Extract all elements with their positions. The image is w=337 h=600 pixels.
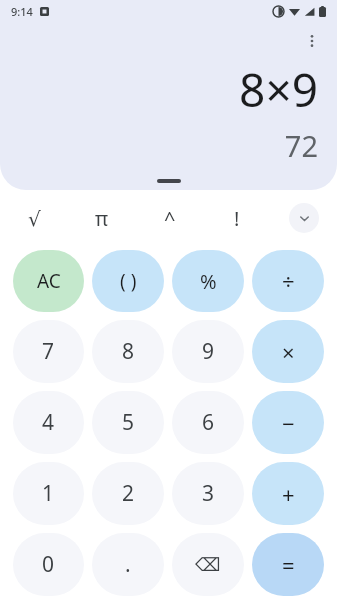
- button[interactable]: 7: [13, 320, 84, 383]
- staticText: 2: [122, 479, 135, 508]
- button[interactable]: AC: [13, 250, 84, 312]
- staticText: 8×9: [0, 58, 318, 121]
- staticText: !: [234, 205, 240, 232]
- button[interactable]: 2: [92, 462, 164, 525]
- staticText: 9: [202, 337, 215, 366]
- button[interactable]: 8: [92, 320, 164, 383]
- staticText: −: [282, 408, 295, 438]
- button[interactable]: 4: [13, 391, 84, 454]
- staticText: 4: [42, 408, 55, 437]
- staticText: 7: [42, 337, 55, 366]
- button[interactable]: 6: [172, 391, 244, 454]
- button[interactable]: 1: [13, 462, 84, 525]
- button[interactable]: .: [92, 533, 164, 596]
- staticText: %: [200, 268, 217, 295]
- staticText: ÷: [282, 266, 295, 296]
- button[interactable]: Delete: [172, 533, 244, 596]
- button[interactable]: 0: [13, 533, 84, 596]
- staticText: 3: [202, 479, 215, 508]
- button[interactable]: 5: [92, 391, 164, 454]
- button[interactable]: Square root: [0, 196, 68, 240]
- button[interactable]: ( ): [92, 250, 164, 312]
- staticText: 8: [122, 337, 135, 366]
- button[interactable]: %: [172, 250, 244, 312]
- staticText: 0: [42, 550, 55, 579]
- staticText: 1: [42, 479, 55, 508]
- button[interactable]: =: [252, 533, 324, 596]
- button[interactable]: −: [252, 391, 324, 454]
- staticText: π: [95, 205, 109, 232]
- button[interactable]: Pi: [68, 196, 136, 240]
- staticText: 9:14: [11, 4, 33, 19]
- staticText: ⌫: [195, 554, 221, 575]
- button[interactable]: Factorial: [203, 196, 270, 240]
- button[interactable]: Power: [136, 196, 203, 240]
- button[interactable]: 3: [172, 462, 244, 525]
- button[interactable]: +: [252, 462, 324, 525]
- button[interactable]: Collapse functions: [289, 203, 319, 233]
- staticText: 72: [0, 126, 318, 165]
- staticText: √: [28, 207, 41, 230]
- staticText: 5: [122, 408, 135, 437]
- staticText: ×: [282, 337, 295, 367]
- staticText: .: [125, 550, 131, 579]
- button[interactable]: More options: [295, 24, 329, 58]
- staticText: 6: [202, 408, 215, 437]
- button[interactable]: ÷: [252, 250, 324, 312]
- button[interactable]: 9: [172, 320, 244, 383]
- staticText: ^: [164, 205, 176, 232]
- button[interactable]: ×: [252, 320, 324, 383]
- staticText: ( ): [120, 268, 137, 294]
- staticText: =: [282, 550, 295, 580]
- staticText: +: [282, 479, 295, 509]
- staticText: AC: [37, 268, 61, 294]
